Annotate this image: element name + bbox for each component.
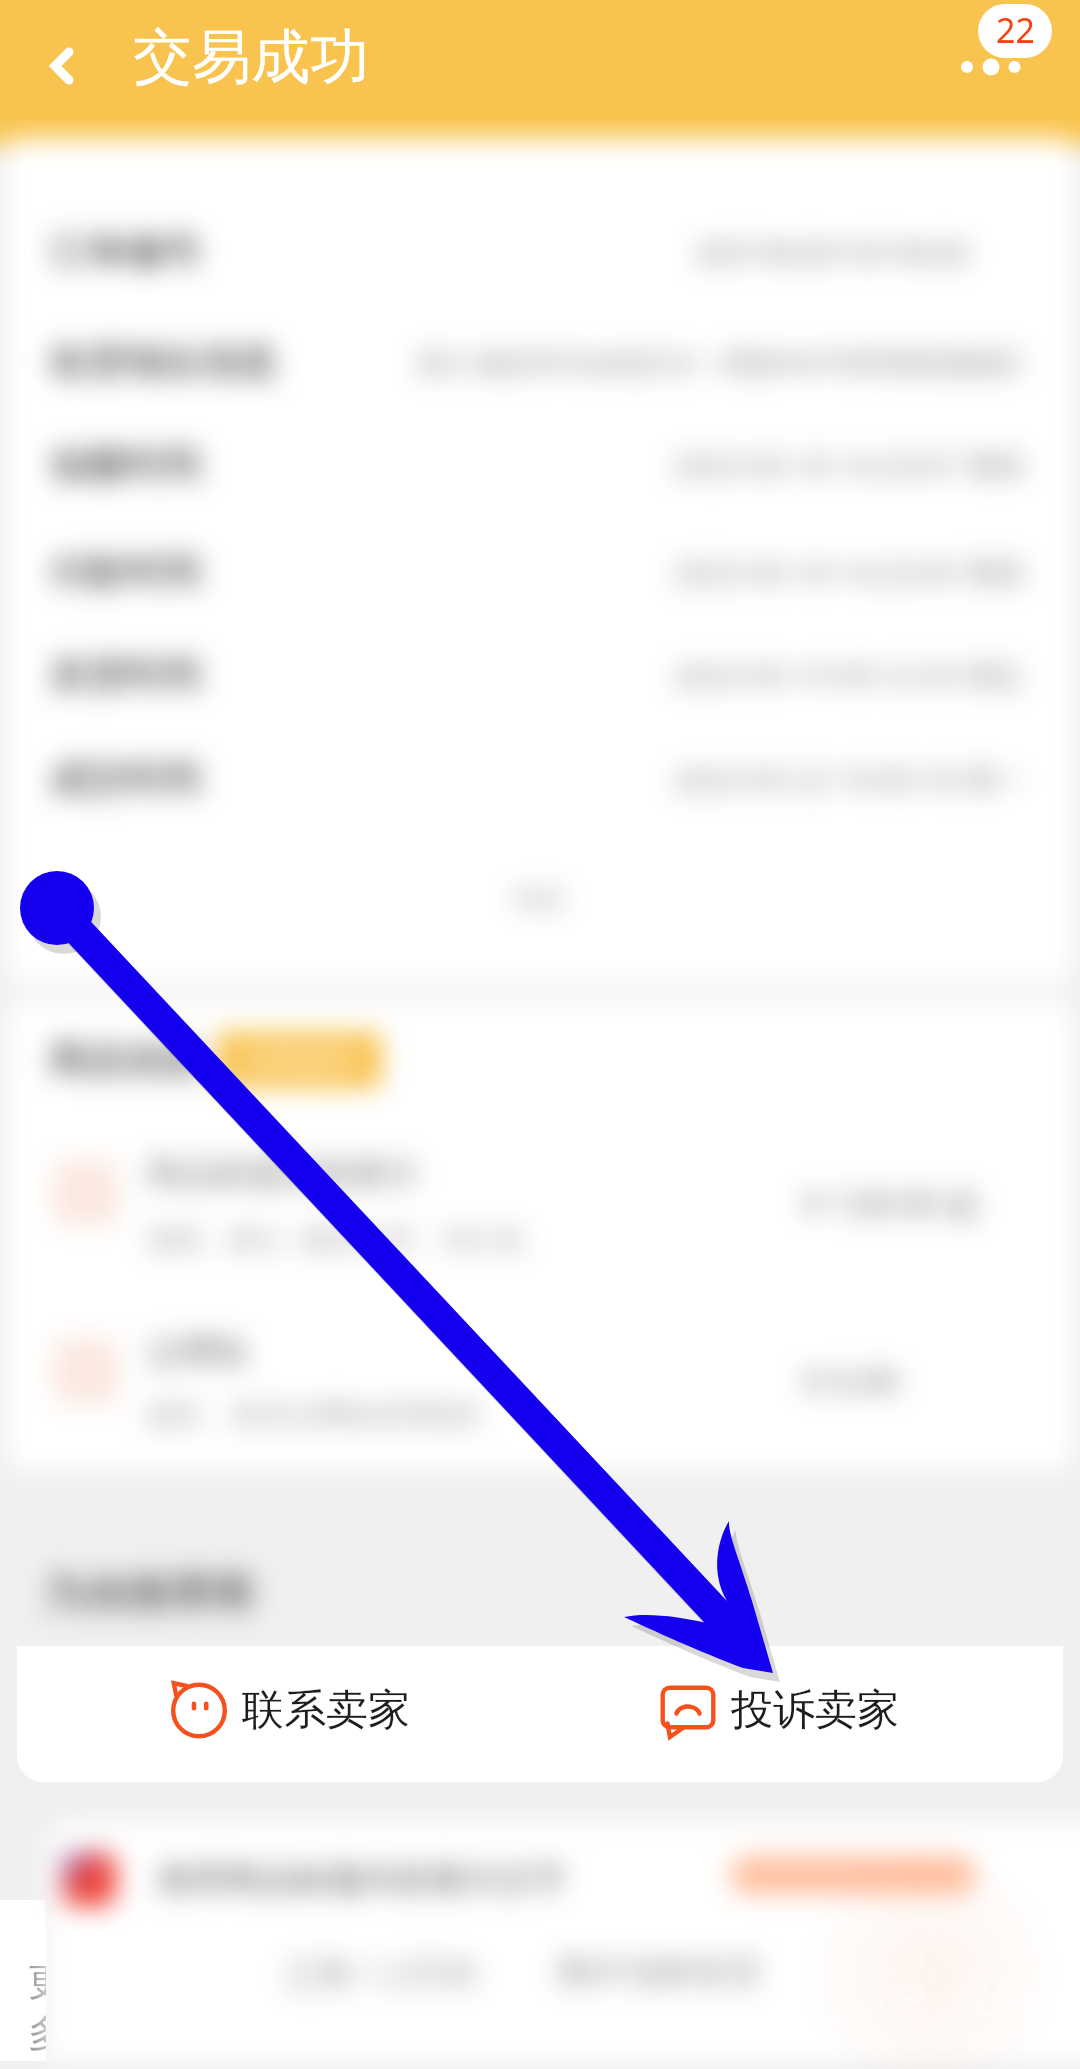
button[interactable]: 创建时间 [7, 441, 1073, 489]
button[interactable]: 成交时间 [7, 755, 1073, 803]
staticText: ¥ 0.00 [803, 1358, 899, 1404]
staticText: 2023-05-19 09:12:33 周五 [673, 655, 1025, 696]
button[interactable]: 订单编号 [7, 228, 1073, 276]
button[interactable]: More options [950, 0, 1068, 96]
staticText: 投诉卖家 [731, 1684, 899, 1737]
staticText: 发货时间 [49, 651, 201, 699]
staticText: 已售 1.2万件 [286, 1950, 479, 1996]
staticText: 付款时间 [49, 548, 201, 596]
staticText: 交易成功 [133, 20, 369, 94]
button[interactable]: 收起 [7, 868, 1073, 928]
staticText: 2837462819374628 [694, 232, 969, 273]
button[interactable]: 联系卖家 [165, 1656, 410, 1764]
staticText: 交易成功 [239, 1041, 359, 1079]
staticText: 为你推荐商 [44, 1568, 254, 1621]
staticText: 创建时间 [49, 441, 201, 489]
staticText: 浙江省杭州市余杭区文一西路969号阿里西溪园区 [416, 343, 1025, 381]
staticText: 22 [996, 7, 1035, 53]
staticText: 2023-05-18 14:23:07 周四 [673, 445, 1025, 486]
staticText: 成交时间 [49, 755, 201, 803]
staticText: 2023-05-22 10:05:18 周一 [673, 759, 1025, 800]
button[interactable]: 收货地址信息 [7, 338, 1073, 386]
staticText: 顺丰包邮发货 [557, 1950, 761, 1993]
button[interactable]: 投诉卖家 [654, 1656, 899, 1764]
button[interactable]: 发货时间 [7, 651, 1073, 699]
staticText: 商品标题名称展示 [147, 1152, 419, 1195]
staticText: 订单编号 [49, 228, 201, 276]
staticText: 服务：退货运费险保障服务 [147, 1397, 483, 1432]
button[interactable]: 运费险 [7, 1330, 1073, 1450]
staticText: Baidu [828, 1972, 959, 2035]
staticText: 2023-05-18 14:23:45 周四 [673, 552, 1025, 593]
staticText: 规格：默认 颜色分类：米白色 [147, 1219, 526, 1257]
staticText: jingyan.baidu.com [828, 2018, 1062, 2055]
staticText: 更多 [28, 1958, 46, 2058]
button[interactable]: 付款时间 [7, 548, 1073, 596]
staticText: ¥ 128.00 起 [803, 1180, 981, 1226]
staticText: 商品信息 [49, 1036, 201, 1084]
button[interactable]: Back [18, 22, 106, 110]
staticText: 收货地址信息 [49, 338, 277, 386]
staticText: 联系卖家 [242, 1684, 410, 1737]
staticText: 推荐商品标题内容展示文字 [158, 1858, 566, 1901]
button[interactable]: 商品标题名称展示 [7, 1152, 1073, 1272]
staticText: 运费险 [147, 1330, 249, 1373]
staticText: 收起 [514, 882, 566, 915]
button[interactable]: More [0, 1900, 46, 2061]
